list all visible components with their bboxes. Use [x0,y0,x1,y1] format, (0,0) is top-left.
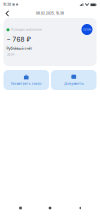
button[interactable]: Back [2,9,13,18]
button[interactable]: Recents [11,201,29,215]
button[interactable]: Back [70,201,88,215]
staticText: 10:38 [3,2,11,7]
staticText: OZON [83,28,91,31]
staticText: − 768 ₽ [6,35,30,43]
staticText: Документы [64,82,83,85]
staticText: Посмотреть заказ [11,82,42,85]
staticText: Рублёвый счёт [6,46,32,50]
button[interactable]: Посмотреть заказ [3,70,49,90]
button[interactable]: Документы [51,70,96,90]
staticText: Успешно выполнен [11,28,42,31]
staticText: 08.02.2025, 10:38 [36,12,64,15]
button[interactable]: Home [41,201,59,215]
staticText: Ozon [6,52,14,56]
